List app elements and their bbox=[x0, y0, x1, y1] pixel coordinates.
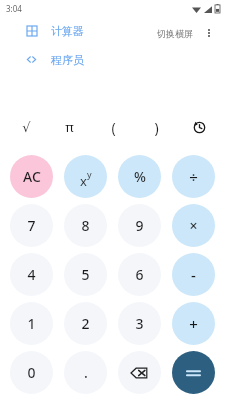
staticText: 切换横屏 bbox=[157, 28, 193, 39]
staticText: 8 bbox=[81, 216, 90, 235]
button[interactable]: 2 bbox=[64, 302, 107, 345]
staticText: 6 bbox=[135, 265, 144, 284]
button[interactable]: 程序员 bbox=[12, 45, 118, 74]
button[interactable]: Backspace bbox=[118, 351, 161, 394]
staticText: ) bbox=[154, 118, 159, 137]
staticText: ( bbox=[111, 118, 116, 137]
button[interactable]: 4 bbox=[10, 253, 53, 296]
button[interactable]: . bbox=[64, 351, 107, 394]
button[interactable]: ( bbox=[99, 113, 127, 141]
staticText: π bbox=[65, 118, 74, 136]
staticText: 3 bbox=[135, 314, 144, 333]
button[interactable]: 9 bbox=[118, 204, 161, 247]
staticText: 5 bbox=[81, 265, 90, 284]
staticText: ÷ bbox=[189, 167, 198, 187]
button[interactable]: 切换横屏 bbox=[155, 24, 195, 43]
staticText: 1 bbox=[27, 314, 36, 333]
staticText: √ bbox=[22, 120, 31, 135]
staticText: y bbox=[87, 168, 92, 180]
button[interactable]: × bbox=[172, 204, 215, 247]
button[interactable]: ) bbox=[142, 113, 170, 141]
button[interactable]: % bbox=[118, 155, 161, 198]
button[interactable]: 0 bbox=[10, 351, 53, 394]
button[interactable]: - bbox=[172, 253, 215, 296]
button[interactable]: Equals bbox=[172, 351, 215, 394]
button[interactable]: x to the power of y bbox=[64, 155, 107, 198]
button[interactable]: 5 bbox=[64, 253, 107, 296]
staticText: AC bbox=[23, 167, 41, 186]
staticText: - bbox=[191, 265, 196, 285]
staticText: × bbox=[189, 216, 198, 235]
button[interactable]: 1 bbox=[10, 302, 53, 345]
button[interactable]: More options bbox=[197, 21, 221, 45]
button[interactable]: 3 bbox=[118, 302, 161, 345]
button[interactable]: ÷ bbox=[172, 155, 215, 198]
staticText: % bbox=[134, 167, 146, 186]
staticText: 4 bbox=[27, 265, 36, 284]
button[interactable]: 7 bbox=[10, 204, 53, 247]
button[interactable]: 8 bbox=[64, 204, 107, 247]
staticText: 7 bbox=[27, 216, 36, 235]
staticText: 计算器 bbox=[51, 24, 84, 38]
staticText: 2 bbox=[81, 314, 90, 333]
staticText: 0 bbox=[27, 363, 36, 382]
button[interactable]: AC bbox=[10, 155, 53, 198]
staticText: + bbox=[189, 314, 198, 334]
button[interactable]: 6 bbox=[118, 253, 161, 296]
staticText: 程序员 bbox=[51, 53, 84, 67]
button[interactable]: 计算器 bbox=[12, 16, 118, 45]
staticText: x bbox=[80, 172, 87, 190]
button[interactable]: π bbox=[55, 113, 83, 141]
button[interactable]: + bbox=[172, 302, 215, 345]
button[interactable]: History bbox=[185, 113, 213, 141]
staticText: 9 bbox=[135, 216, 144, 235]
button[interactable]: √ bbox=[12, 113, 40, 141]
staticText: 3:04 bbox=[6, 3, 22, 14]
staticText: . bbox=[84, 363, 88, 382]
